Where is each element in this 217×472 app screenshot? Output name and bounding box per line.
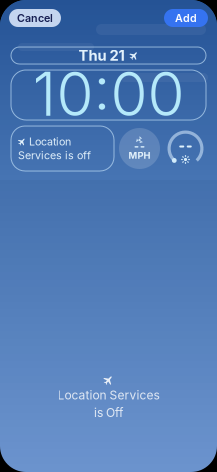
button[interactable]: Add (164, 9, 208, 27)
staticText: Services is off (18, 149, 91, 162)
staticText: MPH (128, 150, 150, 161)
staticText: Add (175, 11, 197, 24)
staticText: Location Services (57, 388, 159, 402)
staticText: Location (29, 135, 71, 148)
staticText: Cancel (17, 11, 53, 24)
button[interactable]: Cancel (9, 9, 61, 27)
staticText: 10:00 (32, 58, 184, 130)
staticText: is Off (94, 405, 123, 420)
staticText: Thu 21 (78, 47, 124, 64)
